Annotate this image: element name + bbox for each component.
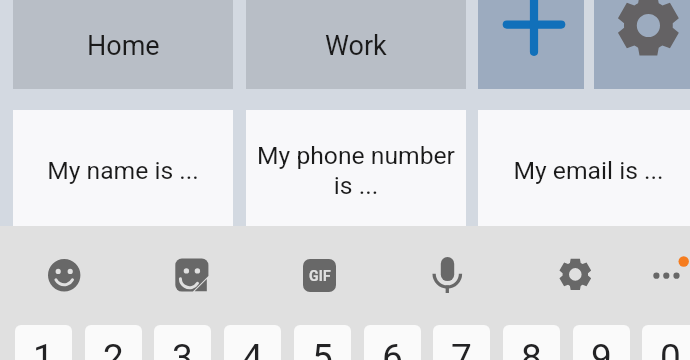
button[interactable]: Voice input [431,252,465,294]
staticText: My name is ... [47,156,199,185]
staticText: GIF [309,268,331,284]
button[interactable]: My phone number is ... [246,110,466,226]
staticText: My phone number is ... [256,141,456,200]
button[interactable]: Emoji [47,258,81,292]
staticText: 1 [33,336,54,360]
staticText: 8 [521,336,542,360]
button[interactable]: 0 [642,325,690,360]
staticText: 3 [172,336,193,360]
staticText: 4 [242,336,263,360]
button[interactable]: 4 [224,325,281,360]
button[interactable]: 2 [85,325,142,360]
button[interactable]: 7 [433,325,490,360]
button[interactable]: My name is ... [13,110,233,226]
button[interactable]: Stickers [175,258,209,292]
button[interactable]: More options [641,258,689,292]
button[interactable]: My email is ... [478,110,690,226]
staticText: 6 [382,336,403,360]
staticText: 0 [660,336,681,360]
button[interactable]: 3 [154,325,211,360]
button[interactable]: 9 [573,325,630,360]
staticText: 2 [103,336,124,360]
button[interactable]: Work [246,0,466,89]
button[interactable]: Home [13,0,233,89]
button[interactable]: Settings [559,256,593,290]
button[interactable]: 1 [15,325,72,360]
staticText: 7 [451,336,472,360]
button[interactable]: 6 [364,325,421,360]
button[interactable]: 8 [503,325,560,360]
staticText: Home [87,30,160,62]
staticText: My email is ... [513,156,664,185]
button[interactable]: Settings [594,0,690,89]
staticText: 5 [312,336,333,360]
button[interactable]: GIF [303,259,336,292]
button[interactable]: 5 [294,325,351,360]
staticText: 9 [591,336,612,360]
staticText: Work [325,30,387,62]
button[interactable]: Add [478,0,584,89]
